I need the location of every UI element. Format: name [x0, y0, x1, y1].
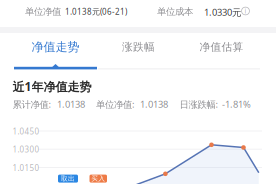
staticText: 单位成本: [157, 6, 193, 17]
button[interactable]: Cost basis info: [239, 4, 252, 17]
button[interactable]: 净值走势: [14, 34, 97, 60]
staticText: -1.81%: [222, 98, 251, 110]
staticText: 单位净值:: [96, 98, 135, 110]
staticText: i: [244, 7, 246, 15]
staticText: 日涨跌幅:: [179, 98, 218, 110]
staticText: 单位净值: [25, 6, 61, 17]
button[interactable]: 净值估算: [180, 34, 263, 60]
staticText: 1.0138: [57, 98, 85, 110]
staticText: 近1年净值走势: [12, 78, 91, 94]
button[interactable]: 涨跌幅: [97, 34, 180, 60]
staticText: 累计净值:: [12, 98, 51, 110]
staticText: 取出: [61, 174, 75, 183]
button[interactable]: 取出: [58, 175, 78, 183]
staticText: 1.0138元(06-21): [65, 6, 127, 17]
staticText: 1.0300: [12, 144, 39, 155]
button[interactable]: 买入: [89, 175, 107, 183]
staticText: 1.0138: [140, 98, 168, 110]
staticText: 净值估算: [199, 40, 243, 53]
staticText: 1.0450: [12, 126, 39, 137]
staticText: 涨跌幅: [122, 40, 155, 53]
staticText: 净值走势: [31, 40, 79, 54]
staticText: 买入: [91, 174, 105, 183]
staticText: 1.0150: [12, 162, 39, 173]
staticText: 1.0330元: [204, 6, 241, 18]
